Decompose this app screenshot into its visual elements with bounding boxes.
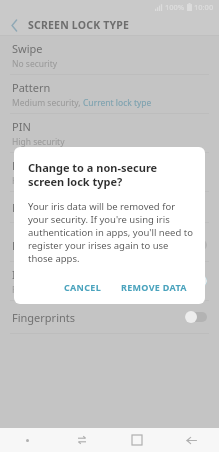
staticText: High security — [12, 175, 65, 187]
staticText: No security — [12, 58, 58, 70]
button[interactable]: Face — [0, 229, 219, 262]
staticText: 10:00 — [194, 2, 214, 12]
button[interactable]: REMOVE DATA — [115, 277, 193, 297]
staticText: 100% — [165, 2, 185, 12]
staticText: Registered — [12, 284, 55, 296]
button[interactable]: Home — [109, 428, 164, 452]
staticText: Fingerprints — [12, 310, 76, 325]
staticText: Current lock type — [83, 97, 152, 109]
staticText: Password — [12, 158, 62, 173]
button[interactable]: Password — [0, 153, 219, 192]
button[interactable]: Recent apps — [54, 428, 109, 452]
button[interactable]: None — [0, 192, 219, 223]
staticText: SCREEN LOCK TYPE — [28, 18, 130, 32]
staticText: Swipe — [12, 41, 43, 56]
button[interactable]: PIN — [0, 114, 219, 153]
staticText: Iris — [12, 267, 29, 282]
button[interactable]: Fingerprints — [0, 301, 219, 334]
button[interactable]: CANCEL — [58, 277, 107, 297]
staticText: Face — [12, 238, 36, 253]
button[interactable]: Iris — [0, 262, 219, 301]
button[interactable]: Back — [164, 428, 219, 452]
staticText: Your iris data will be removed for your … — [28, 200, 193, 265]
staticText: None — [12, 200, 41, 215]
button[interactable]: Pattern — [0, 75, 219, 114]
button[interactable]: Keyboard indicator — [0, 428, 54, 452]
staticText: REMOVE DATA — [121, 281, 187, 293]
staticText: PIN — [12, 119, 31, 134]
staticText: High security — [12, 136, 65, 148]
button[interactable]: Back — [0, 14, 28, 36]
staticText: Medium security, — [12, 97, 83, 109]
button[interactable]: Swipe — [0, 36, 219, 75]
staticText: CANCEL — [64, 281, 101, 293]
staticText: Pattern — [12, 80, 51, 95]
staticText: Change to a non-secure screen lock type? — [28, 160, 193, 189]
